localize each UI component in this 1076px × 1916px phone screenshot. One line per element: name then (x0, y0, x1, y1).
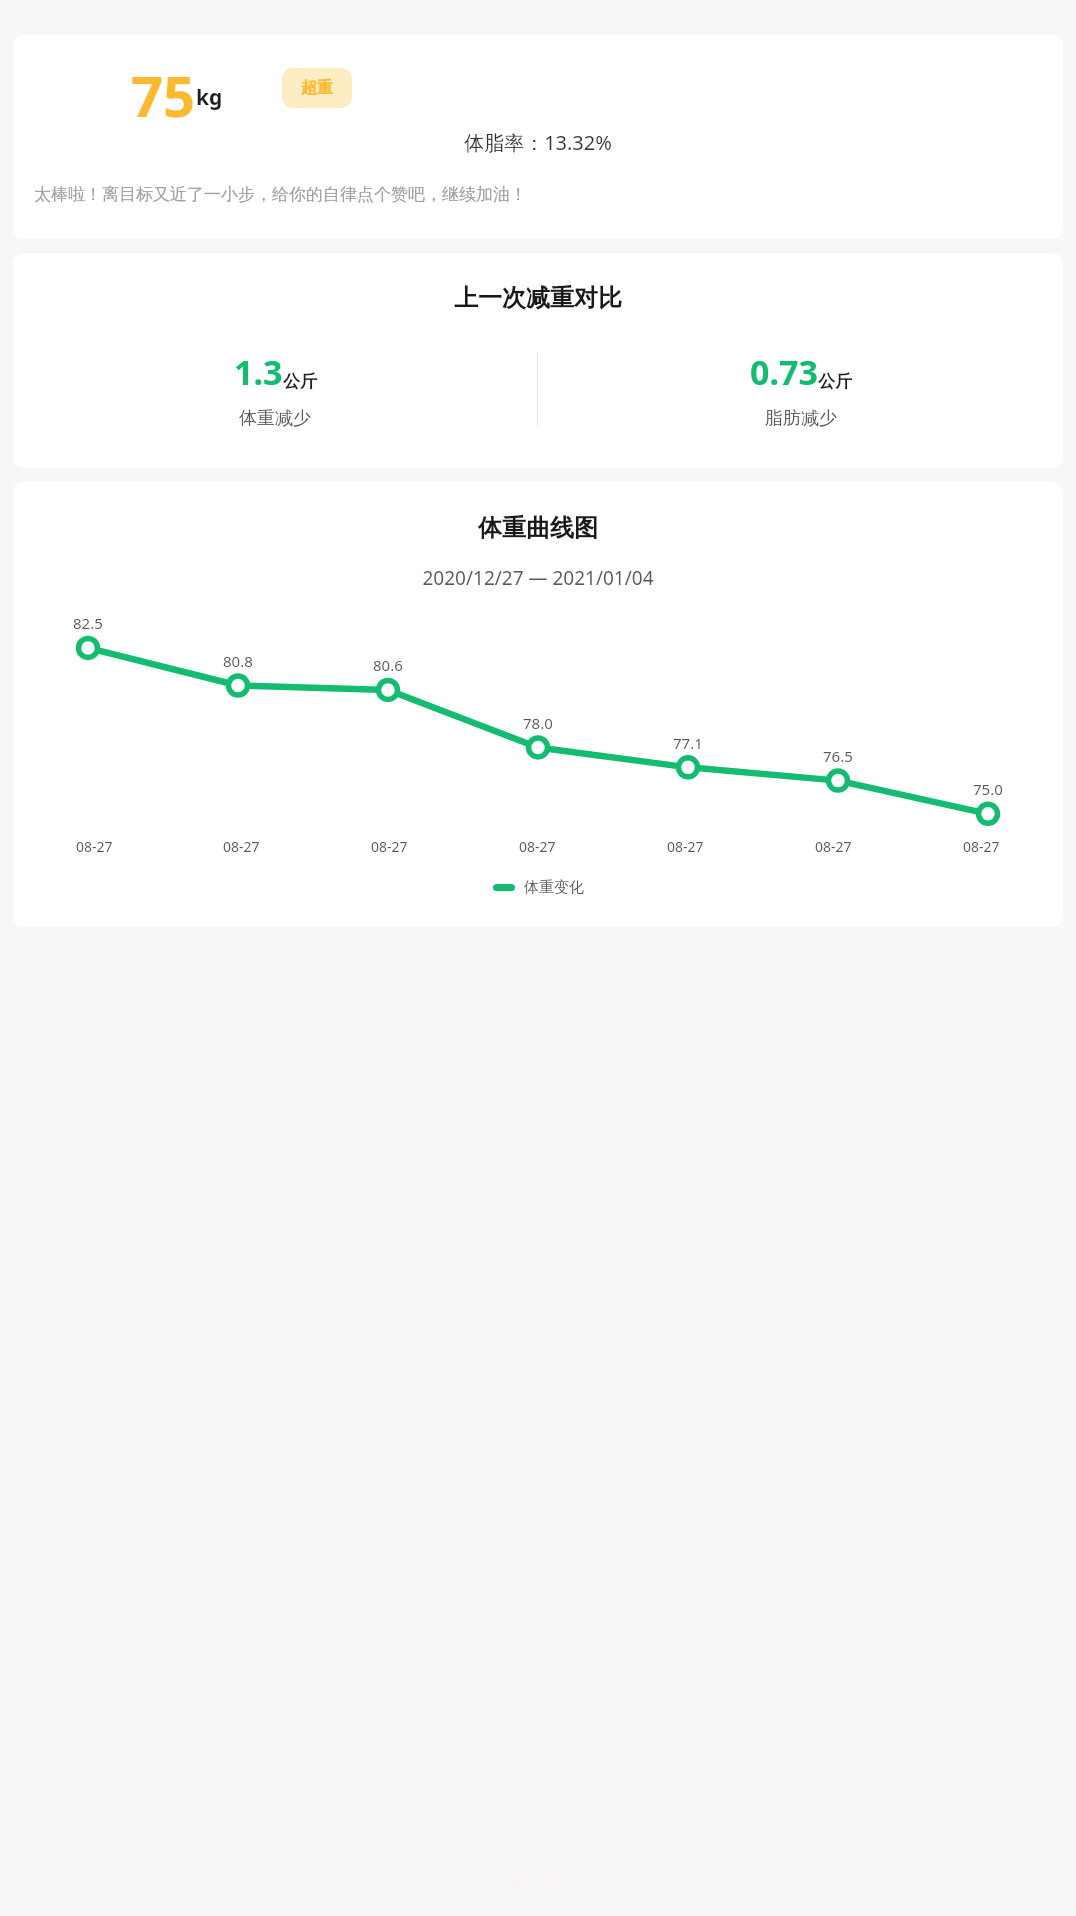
button[interactable]: 体重曲线图 (13, 482, 1063, 927)
staticText: 上一次减重对比 (13, 283, 1063, 313)
button[interactable]: 75 (13, 35, 1063, 239)
staticText: 77.1 (673, 733, 703, 753)
staticText: kg (196, 83, 223, 112)
staticText: 体重曲线图 (13, 513, 1063, 543)
staticText: 公斤 (283, 371, 317, 392)
staticText: 76.5 (823, 746, 853, 766)
staticText: 超重 (301, 78, 333, 98)
staticText: 08-27 (815, 837, 852, 856)
staticText: 0.73 (750, 349, 818, 395)
staticText: 体重减少 (239, 407, 311, 430)
button[interactable]: 1.3 (13, 349, 537, 430)
staticText: 08-27 (519, 837, 556, 856)
staticText: 太棒啦！离目标又近了一小步，给你的自律点个赞吧，继续加油！ (34, 184, 527, 205)
staticText: 78.0 (523, 713, 553, 733)
staticText: 脂肪减少 (765, 407, 837, 430)
staticText: 80.8 (223, 651, 253, 671)
staticText: 08-27 (76, 837, 113, 856)
staticText: 体重变化 (524, 878, 584, 897)
staticText: 08-27 (667, 837, 704, 856)
button[interactable]: 0.73 (538, 349, 1063, 430)
button[interactable]: 超重 (282, 68, 352, 108)
staticText: 08-27 (223, 837, 260, 856)
staticText: 公斤 (818, 371, 852, 392)
staticText: 1.3 (234, 349, 283, 395)
staticText: 体脂率：13.32% (13, 129, 1063, 156)
staticText: 08-27 (371, 837, 408, 856)
button[interactable]: 上一次减重对比 (13, 253, 1063, 468)
staticText: 75.0 (973, 779, 1003, 799)
staticText: 82.5 (73, 613, 103, 633)
staticText: 80.6 (373, 655, 403, 675)
staticText: 2020/12/27 — 2021/01/04 (13, 565, 1063, 591)
staticText: 08-27 (963, 837, 1000, 856)
staticText: 75 (131, 57, 196, 119)
